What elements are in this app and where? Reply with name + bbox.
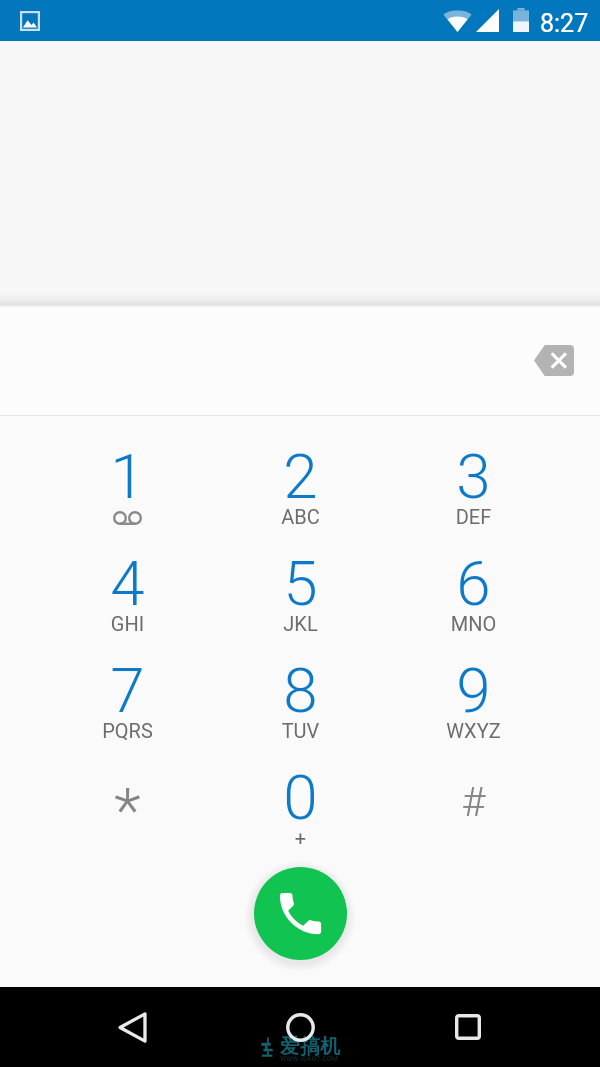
- button[interactable]: 8: [214, 665, 387, 772]
- staticText: 5: [214, 547, 387, 620]
- button[interactable]: *: [41, 772, 214, 879]
- staticText: GHI: [41, 612, 214, 635]
- staticText: 7: [41, 654, 214, 727]
- staticText: 0: [214, 761, 387, 834]
- staticText: 2: [214, 440, 387, 513]
- staticText: 8:27: [540, 9, 589, 38]
- button[interactable]: Back: [96, 991, 168, 1063]
- staticText: JKL: [214, 612, 387, 635]
- staticText: ABC: [214, 505, 387, 528]
- staticText: +: [214, 826, 387, 849]
- staticText: WWW.IGAO7.COM: [280, 1055, 338, 1063]
- button[interactable]: 6: [387, 558, 560, 665]
- button[interactable]: #: [387, 772, 560, 879]
- staticText: PQRS: [41, 719, 214, 742]
- button[interactable]: 7: [41, 665, 214, 772]
- button[interactable]: Home: [264, 991, 336, 1063]
- button[interactable]: 0: [214, 772, 387, 879]
- button[interactable]: 2: [214, 451, 387, 558]
- staticText: #: [387, 778, 560, 826]
- button[interactable]: 4: [41, 558, 214, 665]
- staticText: TUV: [214, 719, 387, 742]
- button[interactable]: 5: [214, 558, 387, 665]
- button[interactable]: 1: [41, 451, 214, 558]
- button[interactable]: 3: [387, 451, 560, 558]
- button[interactable]: Backspace: [526, 332, 582, 388]
- staticText: MNO: [387, 612, 560, 635]
- button[interactable]: 9: [387, 665, 560, 772]
- staticText: 爱搞机: [280, 1034, 340, 1059]
- staticText: 9: [387, 654, 560, 727]
- button[interactable]: Call: [254, 867, 347, 960]
- button[interactable]: Recents: [432, 991, 504, 1063]
- staticText: 4: [41, 547, 214, 620]
- staticText: 3: [387, 440, 560, 513]
- staticText: 8: [214, 654, 387, 727]
- staticText: DEF: [387, 505, 560, 528]
- staticText: WXYZ: [387, 719, 560, 742]
- staticText: *: [41, 774, 214, 847]
- staticText: 1: [41, 440, 214, 513]
- staticText: 6: [387, 547, 560, 620]
